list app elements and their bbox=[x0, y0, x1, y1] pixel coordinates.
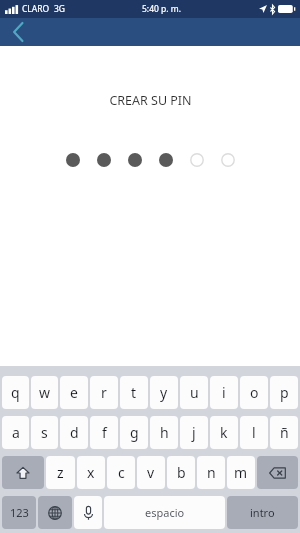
button[interactable]: n bbox=[197, 456, 225, 489]
button[interactable]: i bbox=[210, 376, 238, 409]
button[interactable]: Back bbox=[5, 19, 31, 45]
staticText: n bbox=[207, 463, 216, 482]
staticText: k bbox=[220, 423, 228, 442]
button[interactable]: h bbox=[150, 416, 178, 449]
button[interactable]: l bbox=[240, 416, 268, 449]
staticText: w bbox=[39, 383, 51, 402]
staticText: c bbox=[118, 463, 125, 482]
button[interactable]: d bbox=[60, 416, 88, 449]
staticText: intro bbox=[250, 505, 275, 520]
staticText: p bbox=[280, 383, 289, 402]
staticText: d bbox=[70, 423, 79, 442]
button[interactable]: j bbox=[180, 416, 208, 449]
staticText: q bbox=[11, 383, 20, 402]
staticText: g bbox=[130, 423, 139, 442]
button[interactable]: q bbox=[2, 376, 29, 409]
staticText: v bbox=[147, 463, 155, 482]
staticText: z bbox=[57, 463, 64, 482]
button[interactable]: b bbox=[167, 456, 195, 489]
button[interactable]: Backspace bbox=[257, 456, 298, 489]
button[interactable]: o bbox=[240, 376, 268, 409]
button[interactable]: intro bbox=[227, 496, 298, 529]
button[interactable]: u bbox=[180, 376, 208, 409]
staticText: 3G bbox=[54, 3, 66, 15]
staticText: a bbox=[12, 423, 20, 442]
staticText: e bbox=[70, 383, 78, 402]
button[interactable]: a bbox=[2, 416, 29, 449]
staticText: ñ bbox=[280, 423, 289, 442]
button[interactable]: e bbox=[60, 376, 88, 409]
button[interactable]: x bbox=[77, 456, 105, 489]
staticText: 123 bbox=[10, 505, 29, 520]
button[interactable]: f bbox=[90, 416, 118, 449]
staticText: h bbox=[160, 423, 169, 442]
staticText: o bbox=[250, 383, 259, 402]
button[interactable]: 123 bbox=[2, 496, 36, 529]
staticText: i bbox=[222, 383, 226, 402]
button[interactable]: ñ bbox=[270, 416, 298, 449]
staticText: x bbox=[87, 463, 95, 482]
staticText: CLARO bbox=[22, 3, 50, 15]
staticText: 5:40 p. m. bbox=[142, 3, 182, 15]
button[interactable]: Shift bbox=[2, 456, 44, 489]
staticText: y bbox=[160, 383, 168, 402]
staticText: espacio bbox=[145, 505, 185, 520]
button[interactable]: c bbox=[107, 456, 135, 489]
staticText: m bbox=[234, 463, 248, 482]
staticText: b bbox=[177, 463, 186, 482]
staticText: s bbox=[41, 423, 48, 442]
button[interactable]: r bbox=[90, 376, 118, 409]
staticText: f bbox=[102, 423, 107, 442]
button[interactable]: g bbox=[120, 416, 148, 449]
staticText: j bbox=[192, 423, 196, 442]
button[interactable]: k bbox=[210, 416, 238, 449]
button[interactable]: y bbox=[150, 376, 178, 409]
button[interactable]: z bbox=[46, 456, 75, 489]
button[interactable]: v bbox=[137, 456, 165, 489]
button[interactable]: p bbox=[270, 376, 298, 409]
staticText: r bbox=[101, 383, 107, 402]
button[interactable]: Change keyboard language bbox=[38, 496, 72, 529]
button[interactable]: s bbox=[31, 416, 58, 449]
staticText: t bbox=[131, 383, 137, 402]
button[interactable]: w bbox=[31, 376, 58, 409]
staticText: l bbox=[252, 423, 256, 442]
button[interactable]: Voice input bbox=[74, 496, 102, 529]
staticText: u bbox=[190, 383, 199, 402]
button[interactable]: espacio bbox=[104, 496, 225, 529]
button[interactable]: t bbox=[120, 376, 148, 409]
staticText: CREAR SU PIN bbox=[109, 92, 192, 109]
button[interactable]: m bbox=[227, 456, 255, 489]
